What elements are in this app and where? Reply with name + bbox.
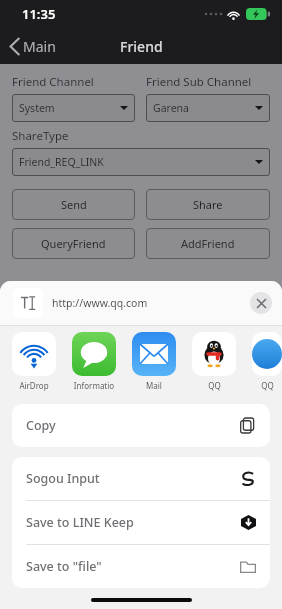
staticText: System bbox=[19, 101, 55, 115]
staticText: ShareType bbox=[12, 128, 69, 144]
button[interactable]: Information bbox=[72, 326, 116, 391]
staticText: Save to LINE Keep bbox=[26, 514, 134, 531]
button[interactable]: Send bbox=[12, 189, 135, 220]
button[interactable]: AddFriend bbox=[146, 228, 270, 259]
staticText: Friend_REQ_LINK bbox=[19, 155, 104, 169]
staticText: Save to "file" bbox=[26, 558, 102, 575]
button[interactable]: QueryFriend bbox=[12, 228, 135, 259]
button[interactable]: QQ bbox=[252, 326, 282, 391]
staticText: Friend bbox=[120, 37, 163, 56]
staticText: Friend Sub Channel bbox=[146, 74, 252, 90]
staticText: Sogou Input bbox=[26, 470, 100, 487]
button[interactable]: Close bbox=[250, 292, 272, 314]
button[interactable]: Garena bbox=[146, 94, 270, 122]
button[interactable]: Copy bbox=[12, 404, 270, 447]
button[interactable]: Mail bbox=[132, 326, 176, 391]
staticText: Information bbox=[72, 380, 116, 391]
staticText: Send bbox=[61, 197, 87, 212]
button[interactable]: QQ bbox=[192, 326, 236, 391]
staticText: AddFriend bbox=[181, 236, 235, 251]
staticText: AirDrop bbox=[19, 380, 49, 391]
staticText: QueryFriend bbox=[41, 236, 106, 251]
staticText: QQ bbox=[208, 380, 221, 391]
button[interactable]: Sogou Input bbox=[12, 457, 270, 500]
button[interactable]: System bbox=[12, 94, 135, 122]
staticText: Share bbox=[193, 197, 223, 212]
staticText: http://www.qq.com bbox=[52, 296, 148, 310]
staticText: 11:35 bbox=[22, 5, 56, 23]
staticText: Main bbox=[23, 37, 56, 56]
staticText: QQ bbox=[261, 380, 274, 391]
staticText: Garena bbox=[153, 101, 189, 115]
button[interactable]: Save to "file" bbox=[12, 545, 270, 588]
staticText: Copy bbox=[26, 417, 56, 434]
button[interactable]: Main bbox=[6, 33, 60, 60]
button[interactable]: Friend_REQ_LINK bbox=[12, 148, 270, 176]
button[interactable]: Save to LINE Keep bbox=[12, 501, 270, 544]
button[interactable]: Share bbox=[146, 189, 270, 220]
staticText: Friend Channel bbox=[12, 74, 94, 90]
button[interactable]: AirDrop bbox=[12, 326, 56, 391]
staticText: Mail bbox=[146, 380, 162, 391]
